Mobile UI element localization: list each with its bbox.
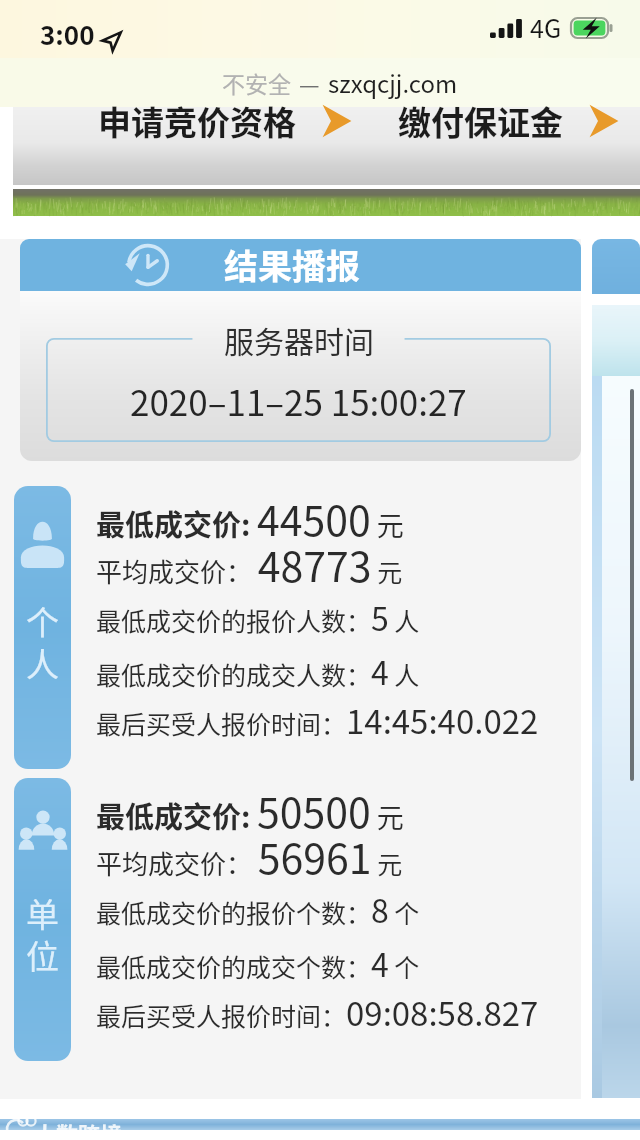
staticText: 最低成交价的报价个数：8 个 — [96, 886, 420, 932]
staticText: 最低成交价的成交个数：4 个 — [96, 940, 420, 986]
staticText: 最低成交价: 44500 元 — [96, 488, 404, 547]
staticText: 最低成交价的报价人数：5 人 — [96, 594, 420, 640]
staticText: 4G — [530, 9, 562, 45]
staticText: 平均成交价： 56961 元 — [96, 826, 403, 885]
staticText: 大数跨境 — [34, 1117, 123, 1140]
staticText: 最低成交价: 50500 元 — [96, 780, 404, 839]
staticText: 服务器时间 — [224, 318, 374, 361]
staticText: 单 — [26, 889, 59, 937]
staticText: szxqcjj.com — [328, 65, 458, 100]
staticText: 最低成交价的成交人数：4 人 — [96, 648, 420, 694]
staticText: 平均成交价： 48773 元 — [96, 534, 403, 593]
staticText: 2020–11–25 15:00:27 — [130, 375, 467, 426]
staticText: 3:00 — [40, 15, 95, 53]
button[interactable]: 个人 — [14, 486, 71, 769]
button[interactable]: 单位 — [14, 778, 71, 1061]
staticText: 人 — [26, 639, 59, 687]
button[interactable]: 缴付保证金 — [398, 97, 619, 145]
button[interactable]: 申请竞价资格 — [98, 97, 352, 145]
staticText: 结果播报 — [224, 240, 360, 289]
staticText: 缴付保证金 — [398, 97, 563, 145]
staticText: 个 — [26, 597, 59, 645]
staticText: 最后买受人报价时间：14:45:40.022 — [96, 696, 539, 744]
staticText: 最后买受人报价时间：09:08:58.827 — [96, 988, 539, 1036]
button[interactable]: 结果播报 — [20, 239, 581, 291]
staticText: — — [299, 66, 320, 99]
staticText: 不安全 — [222, 66, 291, 99]
staticText: 申请竞价资格 — [98, 97, 296, 145]
staticText: 位 — [26, 931, 59, 979]
